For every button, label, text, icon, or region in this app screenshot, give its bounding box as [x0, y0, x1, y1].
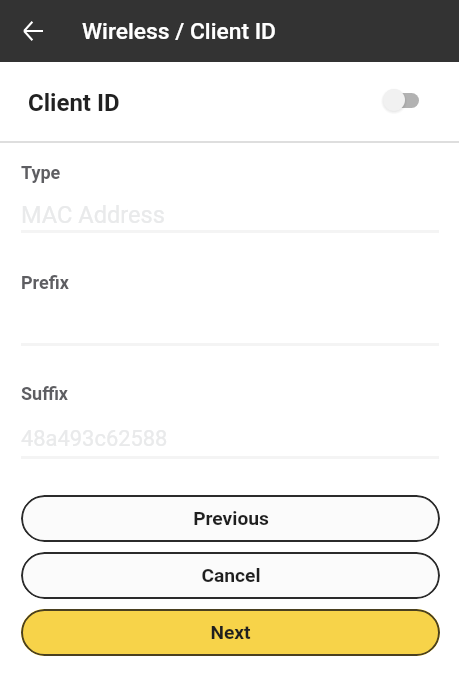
staticText: Cancel: [201, 564, 261, 587]
button[interactable]: Cancel: [21, 552, 440, 599]
staticText: Prefix: [21, 272, 69, 293]
staticText: MAC Address: [21, 201, 165, 229]
staticText: Type: [21, 162, 61, 183]
staticText: Next: [210, 621, 251, 644]
staticText: Suffix: [21, 383, 69, 404]
staticText: Client ID: [28, 89, 120, 117]
staticText: Wireless / Client ID: [82, 18, 276, 45]
staticText: Previous: [193, 507, 269, 530]
button[interactable]: Client ID toggle: [383, 84, 419, 116]
staticText: 48a493c62588: [21, 426, 168, 452]
button[interactable]: Back: [0, 0, 62, 62]
button[interactable]: Next: [21, 609, 440, 656]
button[interactable]: Previous: [21, 495, 440, 542]
